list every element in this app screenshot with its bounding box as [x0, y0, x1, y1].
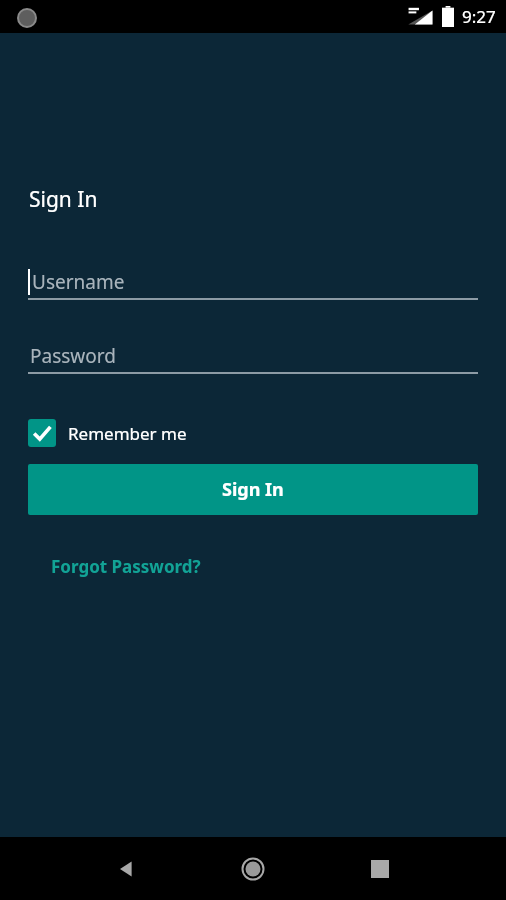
- button[interactable]: Back: [104, 847, 148, 891]
- staticText: Password: [30, 343, 116, 369]
- staticText: Sign In: [29, 185, 98, 214]
- staticText: Sign In: [222, 477, 284, 502]
- button[interactable]: Remember me: [28, 419, 187, 447]
- staticText: Remember me: [68, 422, 187, 445]
- staticText: Forgot Password?: [51, 555, 201, 578]
- staticText: 9:27: [462, 5, 496, 28]
- button[interactable]: Sign In: [28, 464, 478, 515]
- button[interactable]: Forgot Password?: [51, 555, 201, 578]
- staticText: Username: [32, 269, 125, 295]
- button[interactable]: Username: [28, 263, 478, 300]
- button[interactable]: Home: [231, 847, 275, 891]
- button[interactable]: Recent apps: [358, 847, 402, 891]
- button[interactable]: Password: [28, 337, 478, 374]
